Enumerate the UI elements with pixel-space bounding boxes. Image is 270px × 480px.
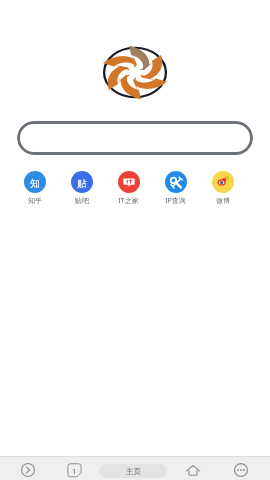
button[interactable]: 知 (11, 171, 58, 205)
button[interactable]: 贴 (58, 171, 105, 205)
staticText: 1 (72, 466, 77, 476)
button[interactable]: 主页 (99, 464, 167, 478)
staticText: 主页 (126, 467, 141, 476)
button[interactable]: Forward (15, 459, 41, 480)
button[interactable]: IP查询 (152, 171, 199, 206)
button[interactable]: 微博 (199, 171, 246, 205)
button[interactable]: Home (180, 459, 206, 480)
staticText: 贴 (77, 177, 87, 190)
button[interactable]: Tabs (61, 460, 87, 480)
staticText: IP查询 (165, 196, 186, 206)
staticText: IT之家 (118, 196, 139, 206)
staticText: 微博 (216, 196, 230, 205)
staticText: 知乎 (28, 196, 42, 205)
button[interactable]: Search (17, 121, 253, 155)
button[interactable]: More (228, 459, 254, 480)
staticText: 贴吧 (75, 196, 89, 205)
staticText: 知 (30, 177, 40, 190)
button[interactable]: IT之家 (105, 171, 152, 206)
